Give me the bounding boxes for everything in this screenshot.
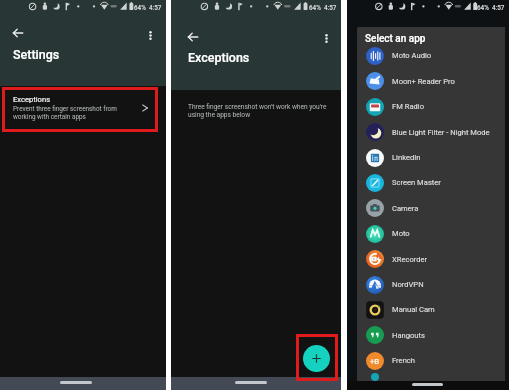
- staticText: Exceptions: [188, 50, 250, 65]
- staticText: Camera: [392, 204, 419, 213]
- button[interactable]: Camera: [357, 195, 505, 221]
- staticText: Screen Master: [392, 178, 441, 187]
- staticText: 4:57: [149, 4, 162, 11]
- staticText: 64%: [309, 4, 321, 11]
- button[interactable]: More options: [317, 29, 336, 48]
- button[interactable]: Hangouts: [357, 322, 505, 348]
- button[interactable]: Moto Audio: [357, 43, 505, 68]
- button[interactable]: Back: [183, 27, 202, 46]
- button[interactable]: XRecorder: [357, 246, 505, 272]
- button[interactable]: Add exception: [303, 345, 330, 372]
- staticText: Moto Audio: [392, 51, 432, 60]
- staticText: Settings: [13, 47, 60, 62]
- staticText: Blue Light Filter - Night Mode: [392, 128, 490, 137]
- button[interactable]: Moon+ Reader Pro: [357, 68, 505, 94]
- staticText: Prevent three finger screenshot from wor…: [13, 105, 125, 121]
- button[interactable]: Moto: [357, 221, 505, 246]
- button[interactable]: [357, 373, 505, 381]
- staticText: Select an app: [365, 33, 426, 45]
- staticText: 64%: [134, 4, 146, 11]
- staticText: Three finger screenshot won't work when …: [188, 103, 328, 119]
- button[interactable]: Blue Light Filter - Night Mode: [357, 119, 505, 145]
- button[interactable]: Screen Master: [357, 170, 505, 195]
- staticText: French: [392, 356, 415, 365]
- button[interactable]: Manual Cam: [357, 297, 505, 322]
- staticText: LinkedIn: [392, 153, 421, 162]
- button[interactable]: LinkedIn: [357, 145, 505, 170]
- staticText: 4:57: [324, 4, 337, 11]
- staticText: Moon+ Reader Pro: [392, 77, 455, 86]
- staticText: NordVPN: [392, 280, 424, 289]
- button[interactable]: More options: [141, 26, 160, 45]
- staticText: Moto: [392, 229, 410, 238]
- staticText: Exceptions: [13, 95, 51, 104]
- button[interactable]: Exceptions: [0, 89, 166, 127]
- staticText: +B: [370, 357, 380, 366]
- button[interactable]: NordVPN: [357, 272, 505, 297]
- button[interactable]: FM Radio: [357, 94, 505, 119]
- button[interactable]: +B: [357, 348, 505, 373]
- staticText: 64%: [477, 4, 489, 11]
- staticText: Hangouts: [392, 331, 425, 340]
- staticText: XRecorder: [392, 255, 428, 264]
- staticText: 4:57: [492, 4, 505, 11]
- staticText: Manual Cam: [392, 305, 435, 314]
- staticText: FM Radio: [392, 102, 424, 111]
- button[interactable]: Back: [8, 23, 27, 42]
